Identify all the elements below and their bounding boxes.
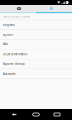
staticText: Acerca de (3, 72, 16, 76)
staticText: Registro (3, 23, 15, 27)
button[interactable]: Settings (36, 5, 72, 12)
button[interactable]: Soporte técnico (0, 59, 72, 69)
button[interactable]: Back (0, 109, 24, 120)
button[interactable]: Home (24, 109, 48, 120)
staticText: Wiki (3, 43, 8, 46)
staticText: Soporte técnico (3, 62, 25, 66)
staticText: Dejar comentarios (3, 52, 27, 56)
button[interactable]: Wiki (0, 40, 72, 49)
staticText: Ajustes (3, 33, 13, 36)
staticText: DATOS DE LA CUENTA (3, 15, 30, 18)
button[interactable]: Recent apps (48, 109, 72, 120)
button[interactable]: Dejar comentarios (0, 50, 72, 59)
button[interactable]: Acerca de (0, 69, 72, 78)
button[interactable]: Ajustes (0, 30, 72, 39)
button[interactable]: Registro (0, 20, 72, 29)
button[interactable]: Messages (0, 5, 36, 12)
